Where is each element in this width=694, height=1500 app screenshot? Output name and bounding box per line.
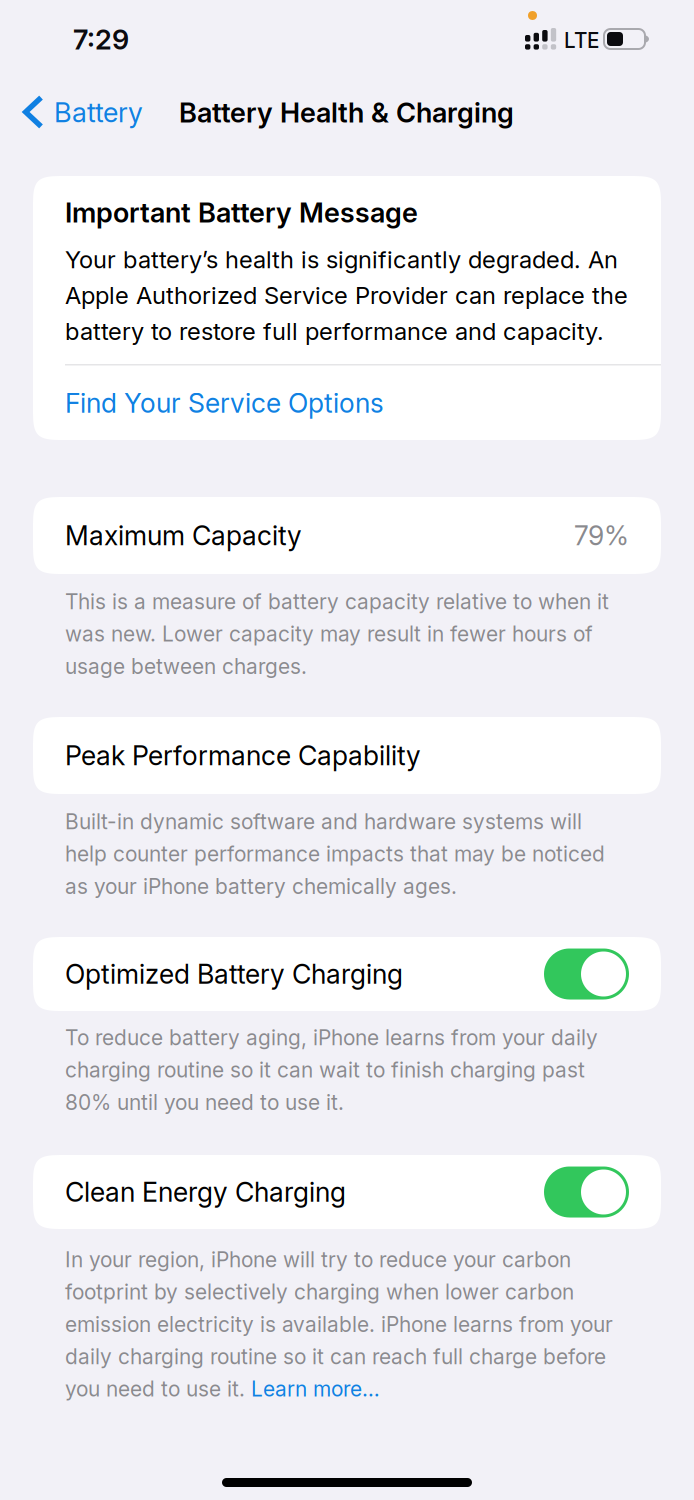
staticText: 7:29	[73, 23, 129, 56]
staticText: To reduce battery aging, iPhone learns f…	[65, 1025, 598, 1115]
staticText: Find Your Service Options	[65, 387, 384, 419]
staticText: Optimized Battery Charging	[65, 958, 403, 990]
button[interactable]: Battery Health & Charging	[179, 85, 514, 140]
staticText: In your region, iPhone will try to reduc…	[65, 1247, 613, 1402]
button[interactable]: Clean Energy Charging	[33, 1155, 661, 1229]
staticText: Important Battery Message	[65, 196, 418, 229]
button[interactable]: Find Your Service Options	[33, 366, 661, 440]
staticText: Clean Energy Charging	[65, 1176, 346, 1208]
button[interactable]: Battery	[19, 90, 165, 148]
staticText: 79%	[574, 519, 629, 552]
staticText: Your battery’s health is significantly d…	[65, 245, 628, 346]
staticText: This is a measure of battery capacity re…	[65, 589, 609, 679]
staticText: Maximum Capacity	[65, 519, 302, 552]
button[interactable]: Maximum Capacity	[33, 497, 661, 574]
staticText: Peak Performance Capability	[65, 739, 421, 772]
staticText: Battery	[54, 96, 143, 129]
staticText: Built-in dynamic software and hardware s…	[65, 809, 605, 899]
button[interactable]: Peak Performance Capability	[33, 717, 661, 794]
staticText: LTE	[564, 28, 599, 53]
button[interactable]: Optimized Battery Charging	[33, 937, 661, 1011]
staticText: Battery Health & Charging	[179, 96, 514, 129]
